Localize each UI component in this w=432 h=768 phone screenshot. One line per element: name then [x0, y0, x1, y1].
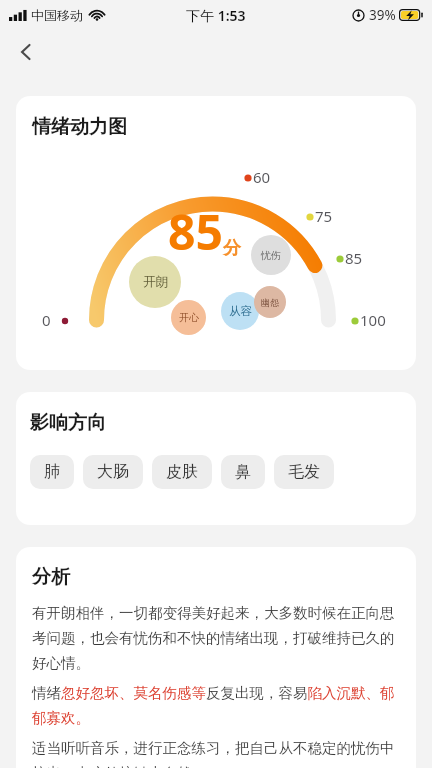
staticText: 毛发 — [288, 462, 320, 482]
staticText: 忧伤 — [261, 249, 281, 262]
staticText: 情绪动力图 — [32, 115, 127, 139]
staticText: 100 — [360, 310, 386, 330]
staticText: 皮肤 — [166, 462, 198, 482]
staticText: 适当听听音乐，进行正念练习，把自己从不稳定的忧伤中拉出，去户外接触大自然。 — [32, 739, 400, 768]
button[interactable]: 皮肤 — [152, 455, 212, 489]
staticText: 大肠 — [97, 462, 129, 482]
staticText: 中国移动 — [31, 7, 83, 23]
button[interactable]: 开朗 — [129, 256, 181, 308]
staticText: 60 — [253, 167, 271, 187]
staticText: 85 — [345, 248, 363, 268]
button[interactable]: Back — [6, 32, 46, 72]
button[interactable]: 大肠 — [83, 455, 143, 489]
staticText: 鼻 — [235, 462, 251, 482]
button[interactable]: 忧伤 — [251, 235, 291, 275]
button[interactable]: 幽怨 — [254, 286, 286, 318]
staticText: 情绪忽好忽坏、莫名伤感等反复出现，容易陷入沉默、郁郁寡欢。 — [32, 684, 400, 727]
staticText: 开心 — [179, 311, 199, 324]
staticText: 从容 — [229, 304, 252, 318]
staticText: 肺 — [44, 462, 60, 482]
staticText: 分 — [223, 237, 241, 260]
staticText: 39% — [369, 6, 396, 24]
button[interactable]: 开心 — [171, 300, 206, 335]
button[interactable]: 肺 — [30, 455, 74, 489]
staticText: 开朗 — [143, 274, 168, 290]
button[interactable]: 鼻 — [221, 455, 265, 489]
staticText: 影响方向 — [30, 411, 106, 435]
staticText: 85 — [168, 199, 223, 264]
staticText: 分析 — [32, 565, 70, 589]
staticText: 有开朗相伴，一切都变得美好起来，大多数时候在正向思考问题，也会有忧伤和不快的情绪… — [32, 604, 400, 672]
button[interactable]: 毛发 — [274, 455, 334, 489]
staticText: 幽怨 — [261, 297, 279, 308]
button[interactable]: 从容 — [221, 292, 259, 330]
staticText: 0 — [42, 310, 51, 330]
staticText: 75 — [315, 206, 333, 226]
staticText: 下午 1:53 — [186, 6, 246, 25]
